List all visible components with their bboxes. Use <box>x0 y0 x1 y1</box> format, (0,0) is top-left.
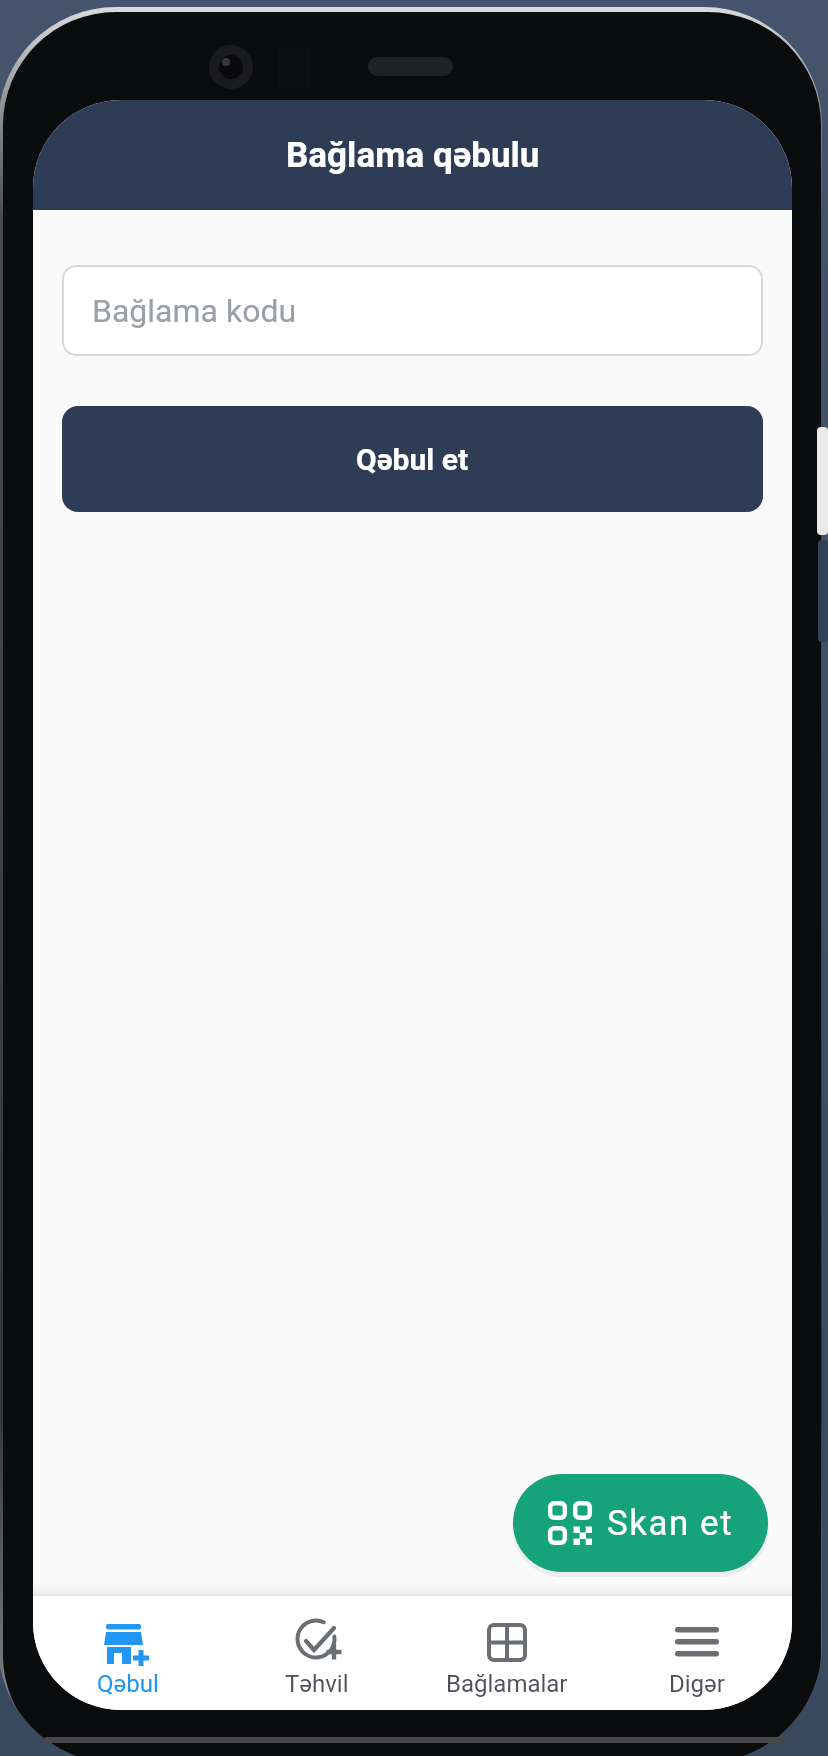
staticText: Təhvil <box>285 1670 349 1698</box>
button[interactable]: Digər <box>602 1596 792 1710</box>
button[interactable]: Qəbul <box>33 1596 222 1710</box>
staticText: Bağlama kodu <box>92 292 297 330</box>
staticText: Qəbul et <box>356 442 469 477</box>
staticText: Bağlamalar <box>446 1670 568 1698</box>
button[interactable]: Bağlamalar <box>412 1596 602 1710</box>
staticText: Qəbul <box>97 1670 159 1698</box>
staticText: Bağlama qəbulu <box>286 135 540 176</box>
button[interactable]: Qəbul et <box>62 406 763 512</box>
button[interactable]: Bağlama kodu <box>62 265 763 356</box>
button[interactable]: Təhvil <box>222 1596 412 1710</box>
staticText: Digər <box>669 1670 725 1698</box>
staticText: Skan et <box>607 1503 734 1544</box>
button[interactable]: Skan et <box>513 1474 768 1572</box>
